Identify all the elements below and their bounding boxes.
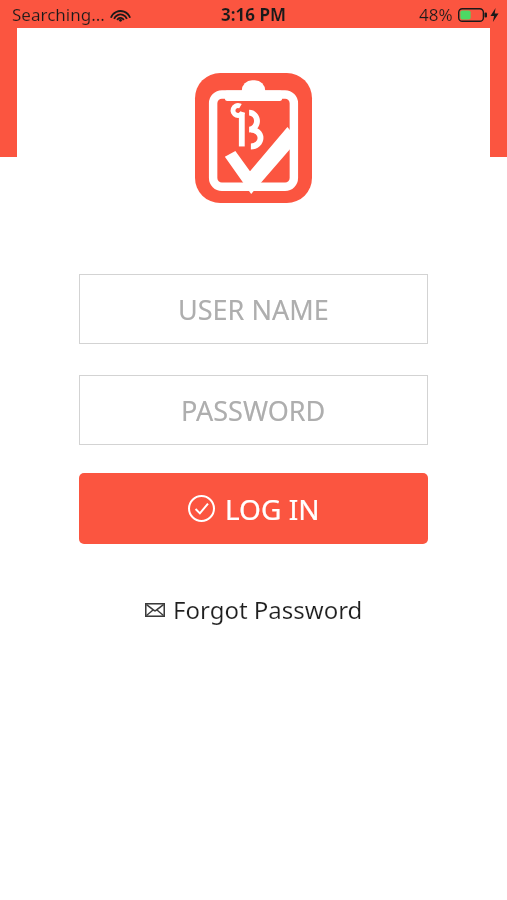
button[interactable]: Forgot Password <box>133 589 375 630</box>
staticText: PASSWORD <box>181 392 326 429</box>
staticText: Searching... <box>12 3 105 26</box>
staticText: 3:16 PM <box>221 3 286 26</box>
staticText: 48% <box>419 3 453 26</box>
other: App logo <box>195 73 312 203</box>
button[interactable]: USER NAME <box>79 274 428 344</box>
staticText: Forgot Password <box>173 593 363 626</box>
staticText: LOG IN <box>225 490 320 528</box>
button[interactable]: LOG IN <box>79 473 428 544</box>
staticText: USER NAME <box>178 291 329 328</box>
button[interactable]: PASSWORD <box>79 375 428 445</box>
